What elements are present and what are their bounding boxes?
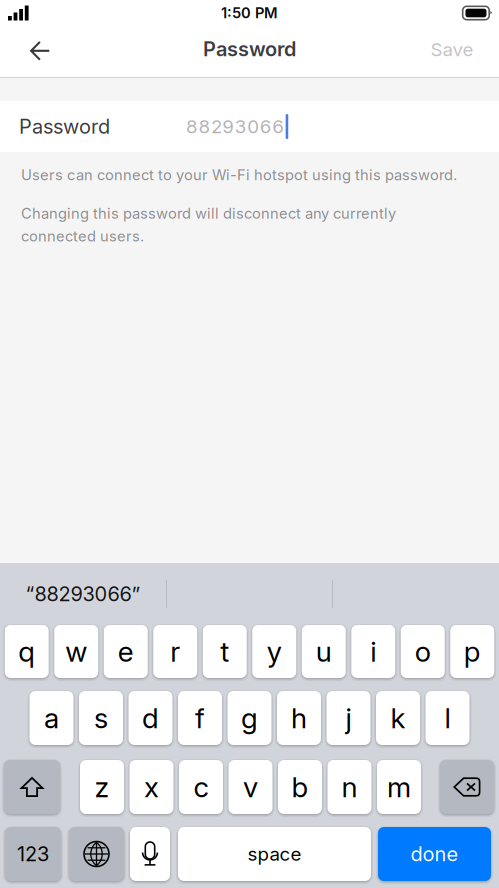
button[interactable]: b <box>278 760 322 814</box>
button[interactable]: Delete <box>440 760 494 814</box>
button[interactable]: space <box>178 827 371 881</box>
button[interactable]: e <box>104 625 148 678</box>
button[interactable]: i <box>351 625 395 678</box>
button[interactable]: m <box>377 760 421 814</box>
button[interactable]: z <box>80 760 124 814</box>
staticText: Save <box>430 38 473 61</box>
button[interactable]: Save <box>407 26 497 77</box>
staticText: d <box>142 701 159 735</box>
button[interactable]: j <box>326 691 370 745</box>
staticText: a <box>44 701 59 735</box>
staticText: w <box>65 635 87 668</box>
button[interactable]: f <box>178 691 222 745</box>
staticText: z <box>94 770 109 804</box>
staticText: “88293066” <box>25 582 140 606</box>
staticText: space <box>247 843 301 865</box>
staticText: g <box>241 701 258 735</box>
button[interactable]: d <box>128 691 172 745</box>
staticText: m <box>387 770 411 804</box>
staticText: n <box>341 770 357 804</box>
staticText: 88293066 <box>186 115 284 138</box>
staticText: b <box>291 770 308 804</box>
button[interactable]: w <box>54 625 98 678</box>
staticText: Changing this password will disconnect a… <box>21 205 396 222</box>
button[interactable]: “88293066” <box>0 572 166 616</box>
button[interactable]: Back <box>0 26 78 77</box>
staticText: done <box>410 842 458 866</box>
button[interactable]: c <box>179 760 223 814</box>
button[interactable]: k <box>376 691 420 745</box>
button[interactable]: a <box>29 691 73 745</box>
staticText: Users can connect to your Wi-Fi hotspot … <box>21 166 457 184</box>
staticText: 1:50 PM <box>221 4 278 22</box>
staticText: t <box>220 635 229 668</box>
button[interactable]: Next keyboard <box>69 827 124 881</box>
button[interactable]: q <box>5 625 49 678</box>
staticText: Password <box>19 114 110 139</box>
button[interactable]: p <box>450 625 494 678</box>
button[interactable]: s <box>79 691 123 745</box>
staticText: p <box>464 635 481 668</box>
staticText: q <box>18 635 35 668</box>
staticText: h <box>291 701 307 735</box>
staticText: i <box>370 635 376 668</box>
button[interactable]: Shift <box>4 760 60 814</box>
button[interactable]: v <box>228 760 272 814</box>
staticText: u <box>316 635 332 668</box>
staticText: x <box>144 770 159 804</box>
staticText: s <box>94 701 108 735</box>
staticText: k <box>390 701 405 735</box>
button[interactable]: x <box>129 760 173 814</box>
button[interactable]: o <box>401 625 445 678</box>
button[interactable]: n <box>327 760 371 814</box>
staticText: j <box>345 701 351 735</box>
staticText: r <box>170 635 180 668</box>
button[interactable]: y <box>252 625 296 678</box>
button[interactable]: t <box>203 625 247 678</box>
button[interactable]: h <box>277 691 321 745</box>
staticText: e <box>118 635 134 668</box>
staticText: o <box>415 635 431 668</box>
staticText: c <box>193 770 208 804</box>
staticText: v <box>243 770 258 804</box>
button[interactable]: 123 <box>5 827 61 881</box>
staticText: y <box>267 635 282 668</box>
button[interactable]: done <box>378 827 491 881</box>
button[interactable]: l <box>425 691 469 745</box>
button[interactable]: g <box>227 691 271 745</box>
staticText: connected users. <box>21 227 144 245</box>
staticText: 123 <box>17 842 49 866</box>
button[interactable]: Dictate <box>130 827 170 881</box>
staticText: f <box>195 701 205 735</box>
staticText: Password <box>203 37 296 61</box>
button[interactable]: u <box>302 625 346 678</box>
button[interactable]: r <box>153 625 197 678</box>
staticText: l <box>444 701 450 735</box>
